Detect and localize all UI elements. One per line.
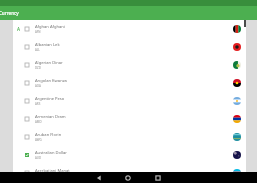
staticText: DZD xyxy=(35,66,41,70)
button[interactable]: Aruban Florin xyxy=(0,128,257,146)
staticText: AWG xyxy=(35,138,42,142)
button[interactable]: Australian Dollar xyxy=(0,146,257,164)
staticText: Algerian Dinar xyxy=(35,60,63,66)
staticText: Aruban Florin xyxy=(35,132,62,138)
staticText: ARS xyxy=(35,102,41,106)
button[interactable]: Angolan Kwanza xyxy=(0,74,257,92)
button[interactable]: Home xyxy=(113,172,143,183)
staticText: AMD xyxy=(35,120,42,124)
button[interactable]: Azerbaijani Manat xyxy=(0,164,257,172)
button[interactable]: A xyxy=(0,20,257,38)
button[interactable]: Argentine Peso xyxy=(0,92,257,110)
staticText: AUD xyxy=(35,156,42,160)
staticText: Angolan Kwanza xyxy=(35,78,67,84)
staticText: Australian Dollar xyxy=(35,150,68,156)
staticText: Argentine Peso xyxy=(35,96,65,102)
staticText: Azerbaijani Manat xyxy=(35,168,70,172)
button[interactable]: Back xyxy=(84,172,114,183)
staticText: Afghan Afghani xyxy=(35,24,65,30)
staticText: A xyxy=(17,26,21,32)
staticText: Armenian Dram xyxy=(35,114,66,120)
staticText: AOA xyxy=(35,84,41,88)
staticText: Add Currency xyxy=(0,10,19,16)
button[interactable]: Albanian Lek xyxy=(0,38,257,56)
staticText: AFN xyxy=(35,30,41,34)
button[interactable]: Recent apps xyxy=(143,172,173,183)
staticText: ALL xyxy=(35,48,40,52)
button[interactable]: Armenian Dram xyxy=(0,110,257,128)
staticText: Albanian Lek xyxy=(35,42,60,48)
button[interactable]: Algerian Dinar xyxy=(0,56,257,74)
